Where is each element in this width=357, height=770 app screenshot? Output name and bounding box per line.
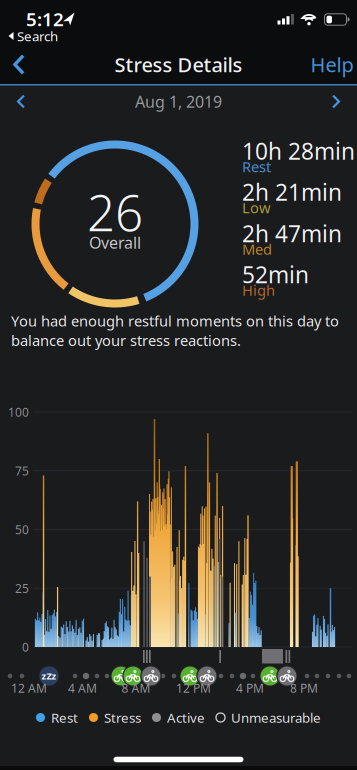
button[interactable]: Help — [310, 51, 353, 78]
staticText: 52min — [242, 259, 309, 289]
staticText: zZz — [41, 670, 56, 682]
staticText: Rest — [242, 157, 271, 176]
staticText: 2h 47min — [242, 218, 342, 248]
staticText: Active — [167, 709, 205, 726]
staticText: High — [242, 280, 275, 300]
staticText: 8 AM — [121, 680, 150, 696]
staticText: You had enough restful moments on this d… — [11, 311, 339, 350]
button[interactable]: Back to Search — [8, 27, 58, 45]
staticText: 12 PM — [176, 680, 211, 696]
staticText: Search — [17, 27, 58, 45]
staticText: 4 PM — [236, 680, 264, 696]
button[interactable]: Previous day — [7, 86, 35, 116]
staticText: Med — [242, 239, 272, 259]
staticText: Overall — [89, 232, 141, 253]
staticText: Stress Details — [114, 51, 242, 78]
staticText: 75 — [15, 463, 29, 479]
staticText: Rest — [51, 709, 78, 726]
staticText: 4 AM — [68, 680, 97, 696]
staticText: 26 — [87, 179, 143, 245]
staticText: 0 — [22, 639, 29, 655]
staticText: Stress — [104, 709, 141, 726]
staticText: 5:12 — [26, 7, 64, 31]
staticText: 12 AM — [11, 680, 47, 696]
staticText: 10h 28min — [242, 136, 355, 166]
button[interactable]: Next day — [322, 86, 350, 116]
button[interactable]: Home — [113, 757, 243, 762]
staticText: 100 — [8, 404, 29, 420]
staticText: 25 — [15, 580, 29, 596]
staticText: Help — [310, 51, 353, 78]
staticText: Aug 1, 2019 — [135, 91, 222, 112]
staticText: 50 — [15, 521, 29, 537]
staticText: 8 PM — [290, 680, 318, 696]
staticText: 2h 21min — [242, 177, 342, 207]
staticText: Unmeasurable — [231, 709, 321, 726]
staticText: Low — [242, 198, 271, 217]
button[interactable]: Back — [4, 44, 34, 84]
